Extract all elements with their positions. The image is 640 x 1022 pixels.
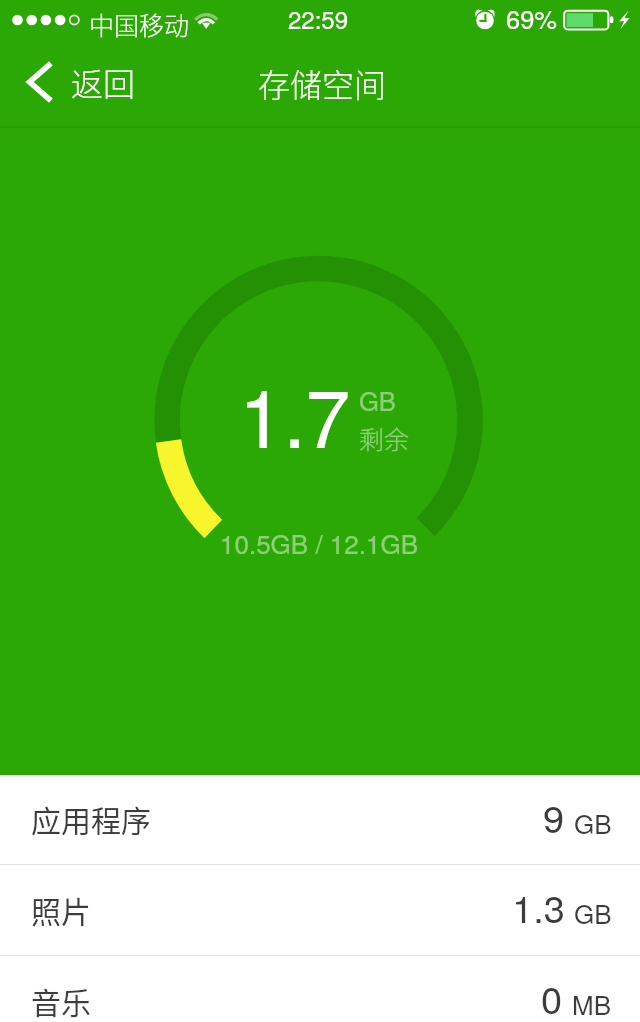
staticText: 1.3 [512,879,565,933]
staticText: 音乐 [31,979,91,1022]
staticText: 22:59 [288,1,349,35]
button[interactable]: 照片 [0,865,640,955]
staticText: 10.5GB / 12.1GB [220,524,419,561]
button[interactable]: 音乐 [0,956,640,1022]
staticText: 69% [506,0,558,37]
button[interactable]: 应用程序 [0,775,640,864]
staticText: 返回 [71,59,136,105]
staticText: 剩余 [359,420,410,456]
staticText: GB [574,804,612,841]
staticText: 应用程序 [31,797,151,840]
button[interactable]: 返回 [0,40,154,123]
staticText: 0 [541,970,563,1022]
staticText: 9 [543,789,565,843]
staticText: MB [572,985,612,1022]
staticText: GB [359,382,396,419]
staticText: 存储空间 [258,60,387,106]
staticText: 中国移动 [89,6,190,42]
staticText: GB [574,894,612,931]
staticText: 1.7 [239,356,351,471]
staticText: 照片 [31,888,91,931]
